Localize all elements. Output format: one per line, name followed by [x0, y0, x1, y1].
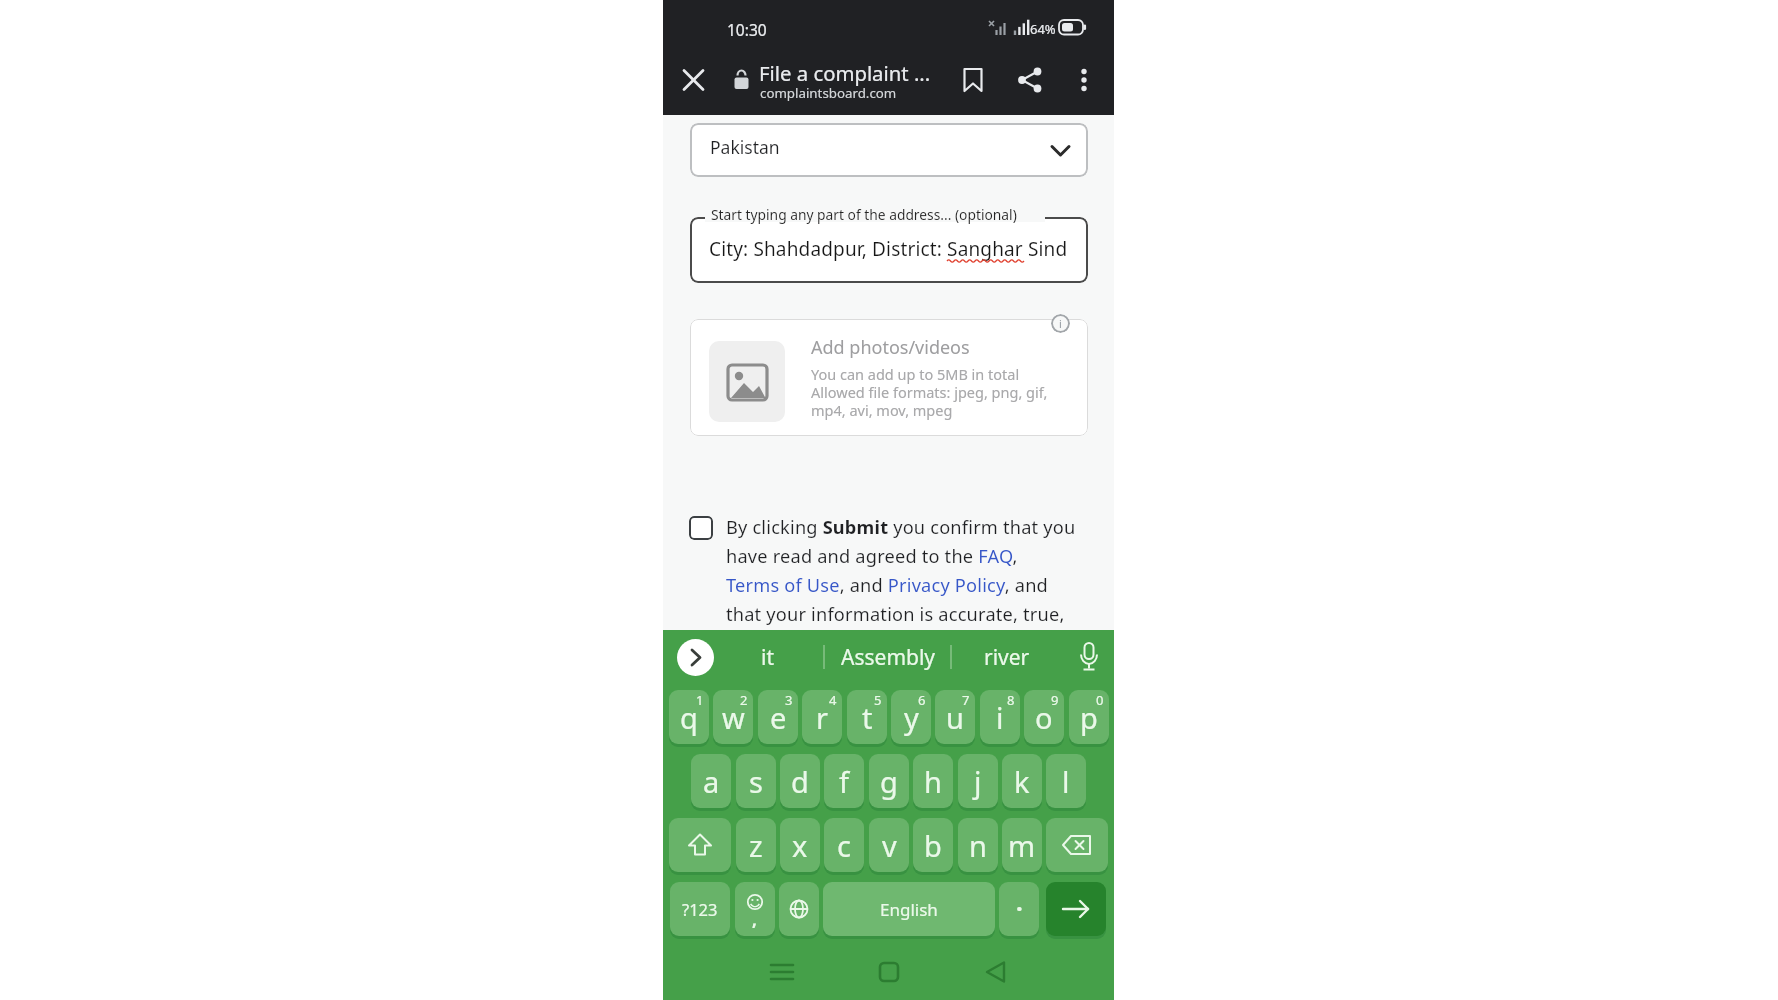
button[interactable]: e [758, 690, 798, 744]
staticText: a [703, 762, 720, 801]
button[interactable]: river [979, 638, 1035, 676]
staticText: w [722, 698, 745, 737]
staticText: river [984, 643, 1030, 672]
staticText: 6 [918, 691, 926, 709]
staticText: 3 [785, 691, 793, 709]
button[interactable] [1046, 818, 1108, 872]
button[interactable] [690, 217, 1088, 283]
button[interactable]: g [869, 754, 909, 808]
staticText: , [752, 908, 757, 931]
button[interactable] [1010, 60, 1050, 100]
staticText: t [862, 698, 873, 737]
button[interactable]: o [1024, 690, 1064, 744]
button[interactable]: f [824, 754, 864, 808]
staticText: z [749, 826, 763, 865]
staticText: o [1035, 698, 1053, 737]
staticText: 4 [829, 691, 837, 709]
button[interactable]: b [913, 818, 953, 872]
staticText: x [792, 826, 808, 865]
staticText: City: Shahdadpur, District: Sanghar Sind [709, 236, 1068, 262]
button[interactable] [1066, 60, 1102, 100]
staticText: it [761, 643, 774, 672]
button[interactable]: Terms of Use, and Privacy Policy, and [726, 573, 1048, 598]
staticText: 7 [962, 691, 970, 709]
button[interactable]: r [802, 690, 842, 744]
staticText: n [969, 826, 987, 865]
staticText: English [880, 898, 938, 921]
staticText: s [749, 762, 763, 801]
button[interactable] [779, 882, 819, 936]
button[interactable] [669, 818, 731, 872]
button[interactable]: h [913, 754, 953, 808]
staticText: f [839, 762, 849, 801]
button[interactable]: d [780, 754, 820, 808]
staticText: ?123 [682, 898, 718, 920]
button[interactable]: w [713, 690, 753, 744]
staticText: g [880, 762, 898, 801]
staticText: 9 [1051, 691, 1059, 709]
button[interactable]: it [739, 638, 795, 676]
button[interactable] [674, 60, 714, 100]
staticText: Start typing any part of the address... … [711, 205, 1017, 224]
button[interactable] [869, 952, 909, 992]
staticText: Pakistan [710, 135, 780, 159]
staticText: 64% [1030, 20, 1056, 38]
button[interactable]: ?123 [670, 882, 730, 936]
button[interactable]: English [823, 882, 995, 936]
button[interactable]: k [1002, 754, 1042, 808]
button[interactable] [953, 60, 993, 100]
button[interactable]: p [1069, 690, 1109, 744]
button[interactable]: that your information is accurate, true, [726, 602, 1065, 627]
button[interactable]: . [999, 882, 1039, 936]
staticText: You can add up to 5MB in total [811, 364, 1020, 384]
button[interactable]: n [958, 818, 998, 872]
button[interactable]: i [1051, 314, 1070, 333]
staticText: 2 [740, 691, 748, 709]
button[interactable]: m [1002, 818, 1042, 872]
button[interactable]: Assembly [841, 638, 935, 676]
staticText: r [816, 698, 828, 737]
button[interactable]: c [824, 818, 864, 872]
staticText: j [974, 762, 982, 801]
staticText: Assembly [841, 643, 935, 672]
button[interactable]: t [847, 690, 887, 744]
button[interactable]: x [780, 818, 820, 872]
staticText: 5 [874, 691, 882, 709]
button[interactable]: q [669, 690, 709, 744]
button[interactable]: l [1046, 754, 1086, 808]
button[interactable]: , [735, 882, 775, 936]
button[interactable]: j [958, 754, 998, 808]
staticText: File a complaint ... [759, 59, 931, 87]
button[interactable]: u [935, 690, 975, 744]
staticText: 0 [1096, 691, 1104, 709]
button[interactable] [677, 639, 714, 676]
button[interactable]: s [736, 754, 776, 808]
staticText: 10:30 [727, 19, 767, 40]
staticText: Add photos/videos [811, 335, 970, 360]
button[interactable]: v [869, 818, 909, 872]
staticText: d [791, 762, 809, 801]
button[interactable]: By clicking Submit you confirm that you [726, 515, 1076, 540]
button[interactable] [762, 952, 802, 992]
button[interactable]: a [691, 754, 731, 808]
button[interactable]: y [891, 690, 931, 744]
staticText: b [924, 826, 942, 865]
button[interactable]: have read and agreed to the FAQ, [726, 544, 1018, 569]
staticText: complaintsboard.com [760, 84, 897, 102]
staticText: k [1014, 762, 1030, 801]
button[interactable]: z [736, 818, 776, 872]
button[interactable] [690, 319, 1088, 436]
button[interactable] [689, 516, 713, 540]
staticText: c [837, 826, 851, 865]
button[interactable] [1046, 882, 1106, 936]
button[interactable] [690, 123, 1088, 177]
staticText: i [996, 698, 1004, 737]
button[interactable] [976, 952, 1016, 992]
staticText: m [1008, 826, 1036, 865]
staticText: Allowed file formats: jpeg, png, gif, [811, 382, 1048, 402]
staticText: e [770, 698, 787, 737]
button[interactable]: i [980, 690, 1020, 744]
staticText: y [904, 698, 919, 737]
staticText: v [882, 826, 897, 865]
staticText: . [1016, 885, 1023, 918]
